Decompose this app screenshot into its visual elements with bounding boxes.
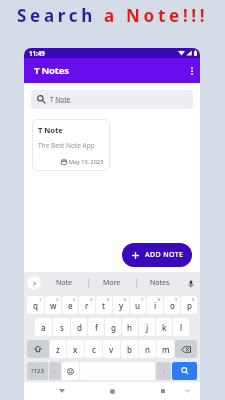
staticText: e — [68, 300, 73, 311]
button[interactable]: g — [105, 318, 121, 336]
staticText: 1 — [39, 297, 42, 303]
button[interactable]: m — [157, 340, 174, 358]
staticText: y — [119, 300, 124, 311]
button[interactable]: . — [156, 362, 171, 380]
button[interactable]: ADD NOTE — [122, 243, 192, 267]
staticText: 7 — [141, 297, 144, 303]
button[interactable]: Emoji — [62, 362, 79, 380]
staticText: 0 — [192, 297, 195, 303]
button[interactable]: h — [122, 318, 138, 336]
button[interactable]: , — [49, 362, 61, 380]
button[interactable]: z — [50, 340, 66, 358]
staticText: i — [154, 300, 157, 311]
button[interactable]: y — [113, 296, 129, 314]
staticText: c — [92, 344, 96, 355]
staticText: j — [146, 322, 149, 333]
button[interactable]: x — [67, 340, 84, 358]
button[interactable]: r — [79, 296, 95, 314]
button[interactable]: n — [139, 340, 156, 358]
button[interactable]: Home — [103, 382, 122, 400]
staticText: ADD NOTE — [145, 250, 184, 260]
staticText: ?123 — [31, 367, 44, 375]
button[interactable]: u — [130, 296, 146, 314]
button[interactable]: Backspace — [175, 340, 197, 358]
staticText: 4 — [90, 297, 93, 303]
staticText: . — [163, 367, 165, 375]
staticText: T Note — [50, 95, 71, 104]
staticText: z — [56, 344, 60, 355]
staticText: 3 — [73, 297, 76, 303]
staticText: Search a Note!!! — [17, 4, 209, 27]
staticText: May 10, 2023 — [69, 158, 104, 165]
staticText: 2 — [56, 297, 59, 303]
staticText: r — [85, 300, 89, 311]
button[interactable]: w — [45, 296, 61, 314]
button[interactable]: e — [62, 296, 78, 314]
button[interactable]: o — [164, 296, 180, 314]
staticText: w — [50, 300, 57, 311]
button[interactable]: T Note — [32, 119, 110, 171]
button[interactable]: s — [53, 318, 70, 336]
button[interactable]: a — [35, 318, 52, 336]
button[interactable]: q — [27, 296, 44, 314]
staticText: T Notes — [34, 64, 69, 77]
button[interactable]: Shift — [27, 340, 49, 358]
staticText: m — [162, 344, 170, 355]
staticText: l — [180, 322, 183, 333]
staticText: Note — [56, 278, 73, 288]
staticText: , — [54, 367, 56, 375]
button[interactable]: l — [173, 318, 189, 336]
staticText: x — [73, 344, 78, 355]
button[interactable]: b — [121, 340, 138, 358]
staticText: p — [187, 300, 192, 311]
button[interactable]: Voice input — [184, 277, 197, 290]
button[interactable]: f — [88, 318, 104, 336]
button[interactable]: More options — [184, 58, 200, 83]
button[interactable]: T Note — [31, 90, 193, 109]
staticText: The Best Note App — [38, 141, 95, 150]
button[interactable]: i — [147, 296, 163, 314]
staticText: 6 — [124, 297, 127, 303]
button[interactable]: k — [156, 318, 172, 336]
staticText: 9 — [175, 297, 178, 303]
staticText: b — [127, 344, 132, 355]
button[interactable]: Hide keyboard — [179, 382, 196, 400]
button[interactable]: Expand suggestions — [27, 276, 41, 290]
staticText: 11:49 — [29, 49, 45, 57]
button[interactable]: j — [139, 318, 155, 336]
button[interactable]: v — [103, 340, 120, 358]
button[interactable]: More — [88, 272, 136, 294]
button[interactable]: d — [71, 318, 87, 336]
staticText: f — [95, 322, 98, 333]
staticText: Notes — [150, 278, 170, 288]
staticText: g — [111, 322, 116, 333]
button[interactable]: t — [96, 296, 112, 314]
staticText: o — [170, 300, 175, 311]
staticText: u — [135, 300, 141, 311]
staticText: a — [41, 322, 46, 333]
staticText: n — [145, 344, 151, 355]
staticText: q — [33, 300, 38, 311]
staticText: v — [109, 344, 114, 355]
staticText: 8 — [158, 297, 161, 303]
button[interactable]: p — [181, 296, 197, 314]
button[interactable]: Notes — [136, 272, 184, 294]
button[interactable]: c — [85, 340, 102, 358]
staticText: T Note — [38, 125, 63, 135]
staticText: t — [102, 300, 106, 311]
button[interactable]: Note — [41, 272, 88, 294]
staticText: h — [127, 322, 133, 333]
button[interactable]: Search — [172, 362, 197, 380]
button[interactable]: Recent apps — [153, 382, 172, 400]
staticText: k — [162, 322, 167, 333]
button[interactable]: ?123 — [27, 362, 48, 380]
staticText: s — [60, 322, 64, 333]
staticText: 5 — [107, 297, 110, 303]
staticText: More — [103, 278, 121, 288]
button[interactable]: Back — [52, 382, 71, 400]
staticText: d — [77, 322, 82, 333]
